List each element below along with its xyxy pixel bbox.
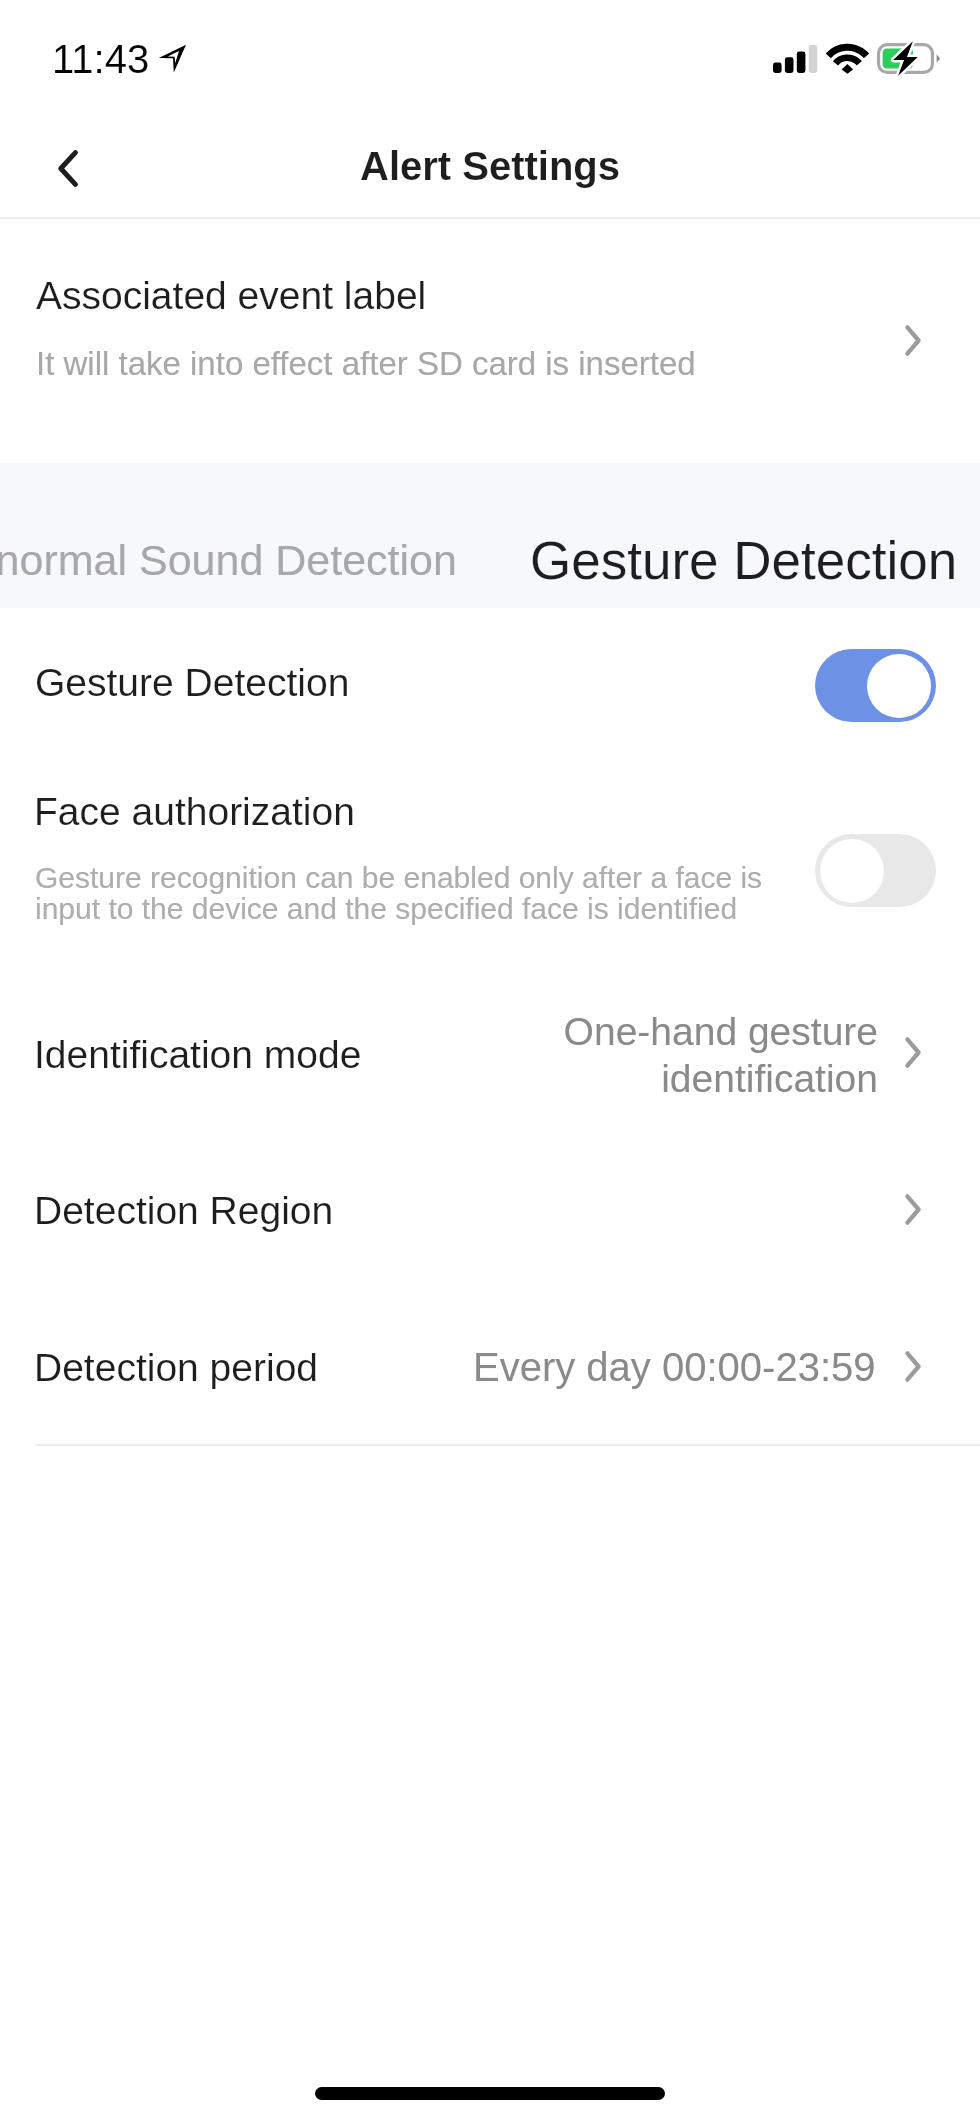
- button[interactable]: Abnormal Sound Detection: [0, 536, 457, 584]
- staticText: Detection period: [34, 1346, 319, 1390]
- button[interactable]: Gesture Detection: [530, 531, 958, 590]
- button[interactable]: [0, 1156, 980, 1312]
- staticText: 11:43: [52, 37, 150, 82]
- staticText: Gesture Detection: [35, 661, 350, 705]
- button[interactable]: [0, 217, 980, 463]
- button[interactable]: Back: [20, 120, 116, 216]
- staticText: Detection Region: [34, 1189, 334, 1233]
- button[interactable]: [0, 760, 980, 960]
- staticText: It will take into effect after SD card i…: [36, 345, 696, 382]
- button[interactable]: Switch off: [815, 834, 936, 907]
- staticText: Face authorization: [34, 790, 355, 834]
- button[interactable]: Alert Settings: [360, 144, 621, 189]
- button[interactable]: [0, 608, 980, 760]
- button[interactable]: [0, 1312, 980, 1468]
- button[interactable]: Switch on: [815, 649, 936, 722]
- staticText: Identification mode: [34, 1033, 362, 1077]
- staticText: One-hand gesture identification: [480, 1010, 878, 1101]
- other: Location: [158, 44, 188, 75]
- button[interactable]: [0, 960, 980, 1156]
- staticText: Associated event label: [36, 274, 427, 318]
- other: Battery charging: [877, 43, 943, 74]
- staticText: Every day 00:00-23:59: [473, 1345, 876, 1390]
- staticText: Gesture recognition can be enabled only …: [35, 861, 763, 925]
- other: Wi-Fi: [821, 41, 873, 75]
